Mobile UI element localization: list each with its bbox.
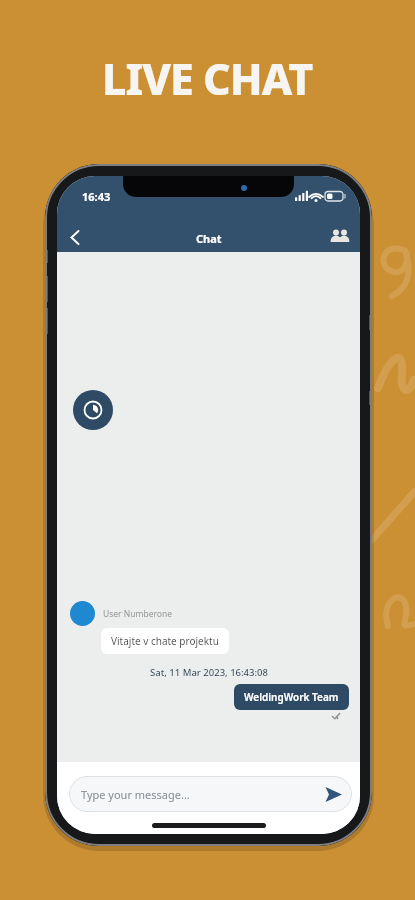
button[interactable] bbox=[63, 224, 93, 250]
staticText: Sat, 11 Mar 2023, 16:43:08 bbox=[150, 666, 268, 679]
button[interactable]: WeldingWork Team bbox=[234, 684, 349, 710]
staticText: Chat bbox=[196, 231, 222, 246]
staticText: WeldingWork Team bbox=[244, 690, 339, 704]
button[interactable] bbox=[323, 224, 355, 250]
button[interactable]: Type your message... bbox=[69, 776, 352, 812]
staticText: Type your message... bbox=[81, 787, 325, 802]
button[interactable]: Vitajte v chate projektu bbox=[101, 628, 229, 654]
staticText: 16:43 bbox=[82, 189, 111, 204]
staticText: LIVE CHAT bbox=[102, 49, 313, 108]
button[interactable] bbox=[73, 390, 113, 430]
staticText: User Numberone bbox=[103, 608, 173, 620]
staticText: Vitajte v chate projektu bbox=[111, 634, 219, 648]
button[interactable] bbox=[325, 786, 342, 803]
